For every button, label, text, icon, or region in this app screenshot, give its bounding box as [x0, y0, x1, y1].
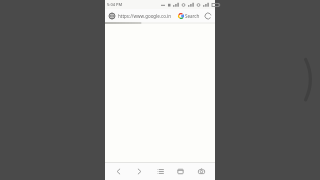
- staticText: 5:04 PM: [107, 2, 123, 7]
- button[interactable]: Forward: [132, 164, 147, 179]
- button[interactable]: Reload page: [204, 12, 212, 20]
- button[interactable]: Menu: [153, 164, 168, 179]
- staticText: Search: [185, 13, 200, 19]
- button[interactable]: Back: [111, 164, 126, 179]
- button[interactable]: Site information: [108, 12, 116, 20]
- button[interactable]: Camera: [194, 164, 209, 179]
- button[interactable]: https://www.google.co.in: [118, 13, 176, 19]
- button[interactable]: Tabs: [173, 164, 188, 179]
- button[interactable]: Search: [177, 13, 201, 19]
